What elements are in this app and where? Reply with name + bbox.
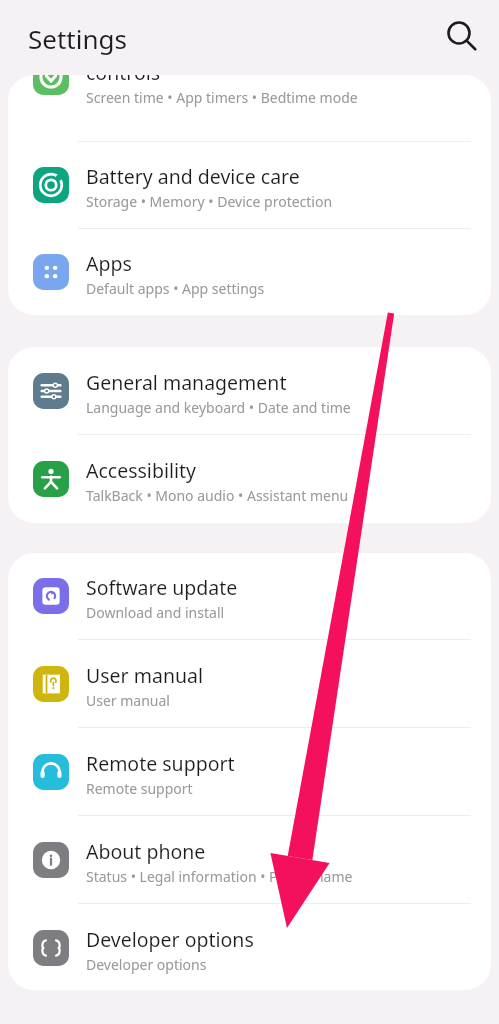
- staticText: General management: [86, 369, 287, 396]
- staticText: controls: [86, 75, 161, 86]
- button[interactable]: Battery and device care: [8, 142, 491, 228]
- staticText: Battery and device care: [86, 163, 300, 190]
- button[interactable]: Accessibility: [8, 435, 491, 523]
- button[interactable]: controls: [8, 75, 491, 141]
- staticText: Apps: [86, 250, 132, 277]
- staticText: TalkBack • Mono audio • Assistant menu: [86, 486, 349, 505]
- staticText: Remote support: [86, 750, 235, 777]
- staticText: Accessibility: [86, 457, 196, 484]
- button[interactable]: Software update: [8, 553, 491, 639]
- button[interactable]: User manual: [8, 640, 491, 727]
- staticText: Screen time • App timers • Bedtime mode: [86, 88, 358, 107]
- staticText: Developer options: [86, 955, 207, 974]
- staticText: User manual: [86, 691, 170, 710]
- staticText: Software update: [86, 574, 238, 601]
- button[interactable]: Developer options: [8, 904, 491, 990]
- button[interactable]: Apps: [8, 229, 491, 315]
- staticText: Default apps • App settings: [86, 279, 265, 298]
- button[interactable]: Remote support: [8, 728, 491, 815]
- staticText: Download and install: [86, 603, 225, 622]
- button[interactable]: About phone: [8, 816, 491, 903]
- staticText: Language and keyboard • Date and time: [86, 398, 351, 417]
- staticText: Remote support: [86, 779, 193, 798]
- staticText: Storage • Memory • Device protection: [86, 192, 333, 211]
- staticText: User manual: [86, 662, 203, 689]
- staticText: Status • Legal information • Phone name: [86, 867, 353, 886]
- button[interactable]: Search: [435, 9, 483, 57]
- staticText: About phone: [86, 838, 206, 865]
- staticText: Developer options: [86, 926, 254, 953]
- staticText: Settings: [28, 21, 127, 56]
- button[interactable]: General management: [8, 347, 491, 434]
